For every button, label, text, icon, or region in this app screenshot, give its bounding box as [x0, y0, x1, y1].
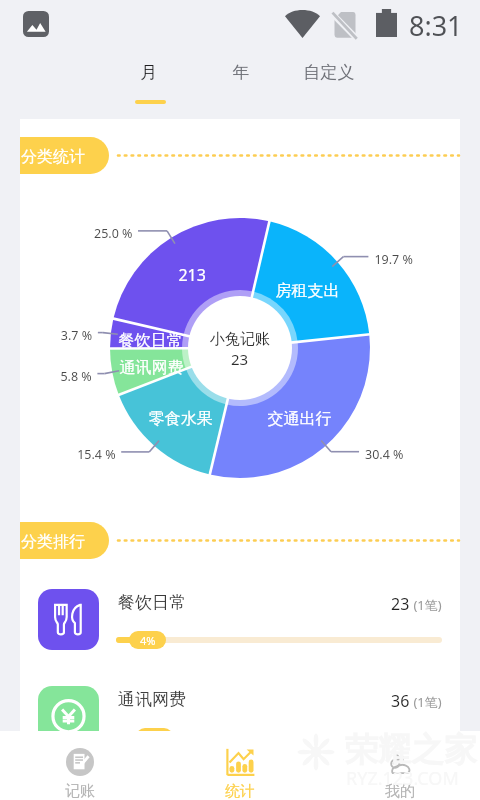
staticText: 年: [203, 62, 279, 83]
staticText: 分类排行: [21, 532, 85, 552]
staticText: 6%: [147, 730, 163, 745]
staticText: 8:31: [409, 7, 463, 44]
staticText: 荣耀之家: [345, 729, 477, 771]
staticText: 我的: [385, 782, 415, 800]
staticText: 自定义: [291, 62, 367, 83]
staticText: 统计: [225, 782, 255, 800]
button[interactable]: Gallery: [23, 11, 49, 37]
staticText: 23: [391, 593, 410, 615]
button[interactable]: 年: [203, 62, 279, 100]
staticText: (1笔): [410, 596, 442, 614]
staticText: (1笔): [410, 693, 442, 711]
staticText: 4%: [140, 633, 156, 648]
staticText: 36: [391, 690, 410, 712]
staticText: 餐饮日常: [118, 592, 186, 613]
button[interactable]: 我的: [320, 731, 480, 800]
staticText: 月: [111, 62, 187, 83]
staticText: 记账: [65, 782, 95, 800]
staticText: RYZ.123.COM: [346, 766, 459, 791]
button[interactable]: 统计: [160, 731, 320, 800]
button[interactable]: 通讯网费: [38, 686, 478, 748]
button[interactable]: 自定义: [291, 62, 367, 100]
staticText: 通讯网费: [118, 689, 186, 710]
button[interactable]: 餐饮日常: [38, 589, 478, 651]
button[interactable]: 月: [111, 62, 187, 104]
button[interactable]: 记账: [0, 731, 160, 800]
staticText: 分类统计: [21, 147, 85, 167]
